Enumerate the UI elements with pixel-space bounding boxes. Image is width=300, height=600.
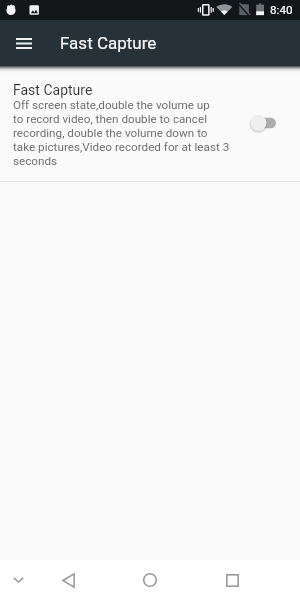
staticText: Off screen state,double the volume up to…	[13, 98, 230, 168]
staticText: 8:40	[270, 3, 293, 17]
button[interactable]: Hide keyboard	[0, 560, 36, 600]
button[interactable]: Fast Capture	[0, 66, 300, 181]
staticText: Fast Capture	[60, 33, 157, 53]
staticText: Fast Capture	[13, 82, 93, 98]
button[interactable]: Open navigation drawer	[0, 20, 48, 66]
button[interactable]: Back	[44, 560, 92, 600]
button[interactable]: Home	[125, 560, 174, 600]
button[interactable]: Fast Capture toggle	[246, 106, 290, 140]
button[interactable]: Recent apps	[208, 560, 257, 600]
